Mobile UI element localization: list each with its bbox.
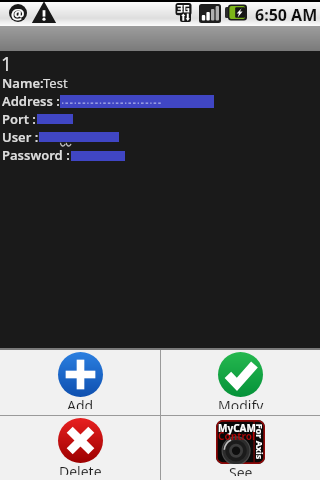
staticText: User : <box>2 128 39 146</box>
staticText: See <box>229 463 253 476</box>
staticText: MyCAM <box>218 421 256 435</box>
staticText: Port : <box>2 110 36 128</box>
staticText: Delete <box>59 462 102 475</box>
staticText: Add <box>67 396 94 409</box>
staticText: Modify <box>218 396 264 409</box>
button[interactable]: Delete <box>0 416 160 480</box>
staticText: For Axis <box>254 423 265 459</box>
button[interactable]: Add <box>0 350 160 415</box>
staticText: 1 <box>1 51 12 77</box>
staticText: Password : <box>2 146 70 164</box>
button[interactable]: Modify <box>161 350 320 415</box>
staticText: Address : <box>2 92 60 110</box>
staticText: Control <box>218 429 256 443</box>
staticText: Test <box>43 74 68 92</box>
staticText: Name: <box>2 74 44 92</box>
button[interactable]: See <box>161 416 320 480</box>
staticText: 6:50 AM <box>255 4 318 26</box>
staticText: @ <box>11 3 25 21</box>
